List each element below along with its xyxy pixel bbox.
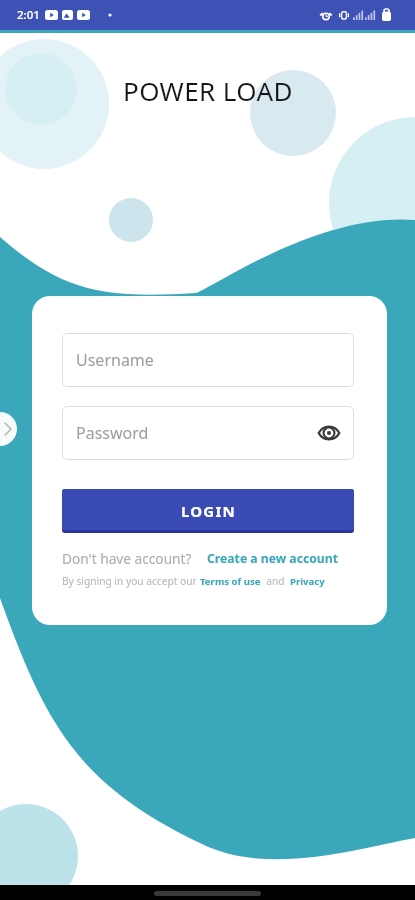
button[interactable]: Username [62,333,354,387]
staticText: Create a new account [207,550,338,567]
button[interactable]: Terms of use [200,575,261,588]
staticText: Terms of use [200,575,261,588]
staticText: POWER LOAD [123,73,293,108]
staticText: Privacy [290,575,325,588]
staticText: Password [76,422,149,444]
staticText: 2:01 [17,7,40,23]
staticText: and [261,574,290,588]
button[interactable]: Show password [314,418,344,448]
staticText: Don't have account? [62,549,192,568]
staticText: By signing in you accept our [62,574,200,588]
staticText: Username [76,349,154,371]
button[interactable]: LOGIN [62,489,354,533]
button[interactable]: Create a new account [207,550,338,567]
button[interactable]: Privacy [290,575,325,588]
button[interactable]: Password [62,406,354,460]
staticText: LOGIN [181,501,236,521]
